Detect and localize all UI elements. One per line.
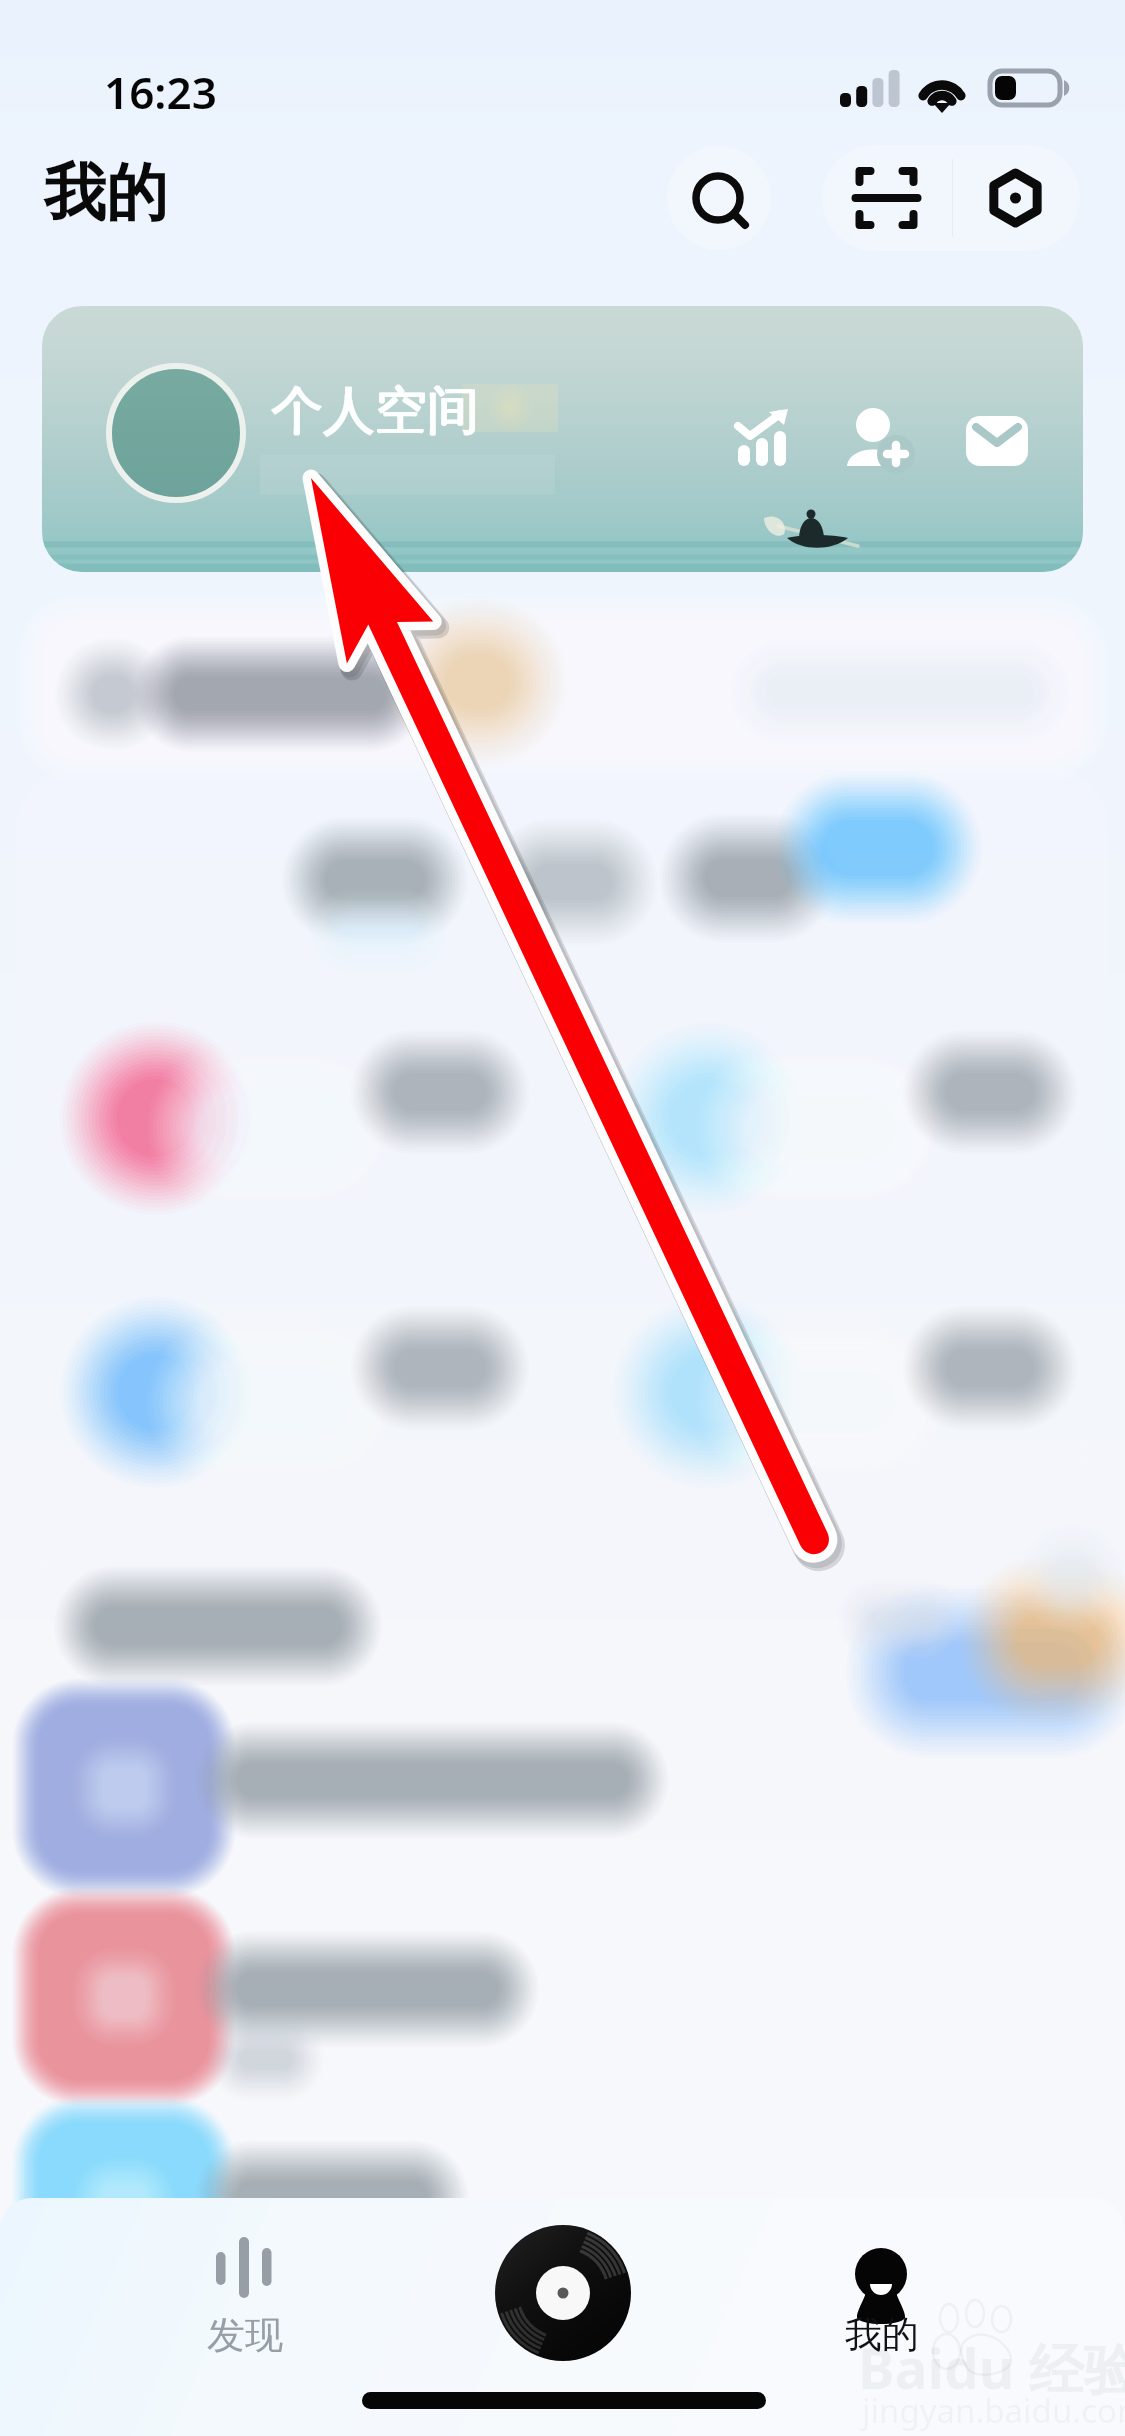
button[interactable]: Add friend	[837, 404, 933, 484]
staticText: 个人空间	[272, 378, 480, 444]
button[interactable]: 发现	[165, 2216, 325, 2366]
staticText: 我的	[44, 154, 168, 232]
staticText: 个人空间	[270, 378, 478, 444]
staticText: 个人空间	[271, 379, 479, 445]
staticText: Baidu 经验	[858, 2330, 1125, 2405]
button[interactable]: Scan	[822, 145, 951, 251]
staticText: 16:23	[104, 62, 217, 122]
button[interactable]: 我的	[802, 2216, 962, 2366]
staticText: 发现	[207, 2311, 283, 2359]
button[interactable]: 个人空间	[42, 306, 1083, 572]
staticText: 我的	[845, 2311, 919, 2358]
button[interactable]: Now playing	[494, 2224, 632, 2362]
button[interactable]: Stats	[730, 404, 826, 484]
button[interactable]: Search	[667, 146, 771, 250]
button[interactable]: Messages	[955, 404, 1051, 484]
staticText: jingyan.baidu.com	[862, 2388, 1125, 2433]
button[interactable]: Settings	[951, 145, 1080, 251]
